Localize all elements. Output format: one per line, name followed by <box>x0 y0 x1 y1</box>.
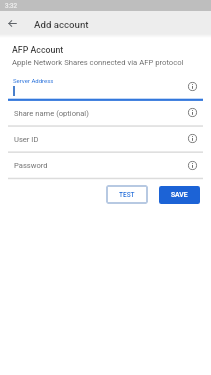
staticText: Password <box>14 161 48 170</box>
staticText: Add account <box>34 19 89 30</box>
staticText: 3:32 <box>5 2 18 9</box>
staticText: SAVE <box>171 191 188 199</box>
button[interactable]: SAVE <box>159 186 200 204</box>
staticText: TEST <box>119 191 135 199</box>
button[interactable]: Navigate up <box>1 12 24 35</box>
staticText: Apple Network Shares connected via AFP p… <box>12 58 184 67</box>
staticText: Share name (optional) <box>14 109 89 118</box>
button[interactable]: More information <box>188 108 197 117</box>
button[interactable]: TEST <box>106 185 148 204</box>
button[interactable]: More information <box>188 134 197 143</box>
staticText: Server Address <box>13 77 54 84</box>
button[interactable]: More information <box>188 161 197 170</box>
staticText: User ID <box>14 135 39 144</box>
button[interactable]: More information <box>188 82 197 91</box>
staticText: AFP Account <box>12 45 64 55</box>
